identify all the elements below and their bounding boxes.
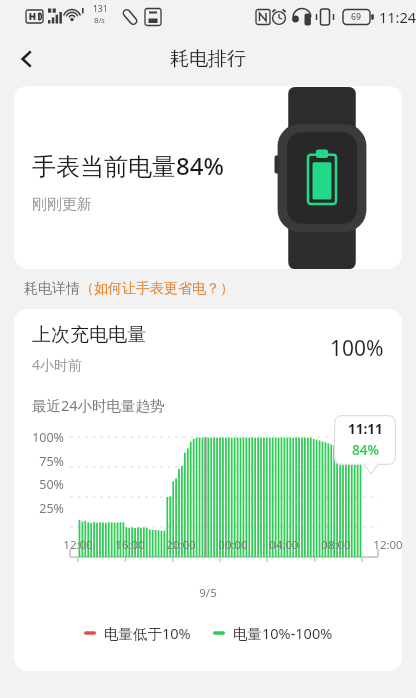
staticText: 耗电排行 [170, 47, 246, 71]
staticText: 11:11 [348, 420, 383, 438]
staticText: 50% [14, 476, 64, 493]
staticText: 12:00 [365, 537, 402, 553]
staticText: 9/5 [14, 585, 402, 601]
staticText: 75% [14, 453, 64, 470]
staticText: 08:00 [313, 537, 359, 553]
button[interactable]: Back [5, 37, 49, 81]
button[interactable]: 手表当前电量84% [14, 86, 402, 269]
staticText: 最近24小时电量趋势 [32, 395, 165, 415]
staticText: 4小时前 [32, 355, 83, 374]
staticText: 04:00 [261, 537, 307, 553]
staticText: 100% [330, 334, 384, 363]
staticText: 手表当前电量84% [32, 149, 224, 182]
staticText: 20:00 [158, 537, 204, 553]
staticText: （如何让手表更省电？） [80, 280, 234, 298]
staticText: 00:00 [210, 537, 256, 553]
staticText: 69 [351, 11, 362, 23]
staticText: 上次充电电量 [32, 323, 146, 347]
staticText: 11:24 [379, 7, 416, 27]
staticText: 刚刚更新 [32, 195, 92, 214]
staticText: 131 [93, 3, 108, 15]
staticText: 25% [14, 500, 64, 517]
staticText: 电量低于10% [104, 623, 191, 643]
staticText: B/s [94, 15, 105, 25]
staticText: 100% [14, 429, 64, 446]
staticText: 12:00 [55, 537, 101, 553]
staticText: 16:00 [107, 537, 153, 553]
button[interactable]: 耗电详情 [24, 269, 416, 309]
staticText: 84% [352, 441, 379, 459]
staticText: 电量10%-100% [233, 623, 333, 643]
staticText: 耗电详情 [24, 280, 80, 298]
